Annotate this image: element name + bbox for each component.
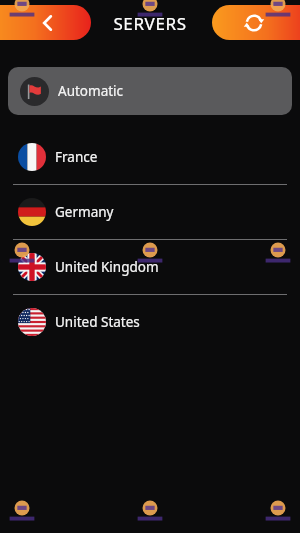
staticText: SERVERS xyxy=(113,12,187,35)
button[interactable]: United States xyxy=(0,295,300,349)
button[interactable]: France xyxy=(0,130,300,184)
button[interactable]: Germany xyxy=(0,185,300,239)
staticText: United Kingdom xyxy=(55,258,159,276)
staticText: Automatic xyxy=(58,82,124,100)
staticText: United States xyxy=(55,313,140,331)
button[interactable]: United Kingdom xyxy=(0,240,300,294)
staticText: France xyxy=(55,148,98,166)
staticText: Germany xyxy=(55,203,114,221)
button[interactable]: Automatic xyxy=(8,67,292,115)
button[interactable]: Back xyxy=(0,5,91,40)
button[interactable]: Refresh xyxy=(212,5,300,40)
